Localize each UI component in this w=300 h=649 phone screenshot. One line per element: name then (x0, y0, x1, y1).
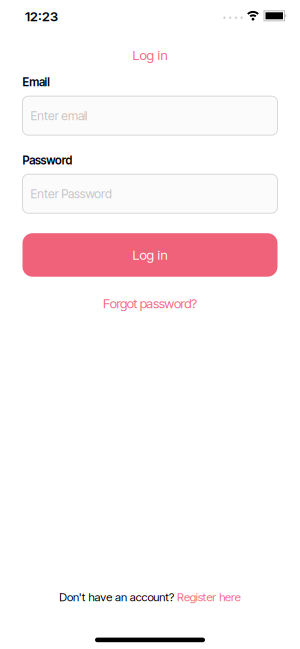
staticText: Password (22, 153, 72, 167)
staticText: Log in (132, 47, 167, 63)
staticText: Log in (132, 247, 167, 263)
staticText: Enter email (30, 108, 87, 123)
button[interactable]: Register here (177, 590, 241, 604)
staticText: Forgot password? (103, 296, 197, 311)
staticText: 12:23 (25, 8, 58, 24)
staticText: Email (22, 75, 50, 89)
staticText: Register here (177, 590, 241, 604)
staticText: Enter Password (30, 186, 112, 201)
staticText: Don't have an account? (59, 590, 174, 604)
button[interactable]: Enter email (22, 96, 277, 135)
button[interactable]: Enter Password (22, 174, 277, 213)
button[interactable]: Forgot password? (103, 296, 197, 311)
button[interactable]: Log in (22, 233, 277, 277)
